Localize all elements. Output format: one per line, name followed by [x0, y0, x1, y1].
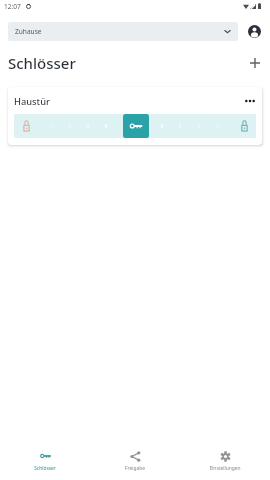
staticText: Zuhause: [15, 27, 42, 36]
button[interactable]: Account: [243, 20, 265, 42]
staticText: Freigabe: [125, 465, 145, 472]
staticText: 12:07: [4, 2, 21, 11]
staticText: Schlösser: [8, 53, 76, 73]
staticText: Schlösser: [34, 465, 56, 472]
button[interactable]: More options: [241, 92, 259, 110]
staticText: Einstellungen: [209, 465, 241, 472]
button[interactable]: Schlösser: [0, 438, 90, 480]
staticText: Haustür: [14, 95, 50, 108]
button[interactable]: Einstellungen: [180, 438, 270, 480]
button[interactable]: Add lock: [244, 52, 266, 74]
button[interactable]: Unlock door: [123, 114, 149, 138]
button[interactable]: Zuhause: [8, 22, 238, 41]
button[interactable]: Freigabe: [90, 438, 180, 480]
button[interactable]: Haustür: [8, 87, 262, 145]
button[interactable]: Unlock door: [14, 114, 256, 138]
